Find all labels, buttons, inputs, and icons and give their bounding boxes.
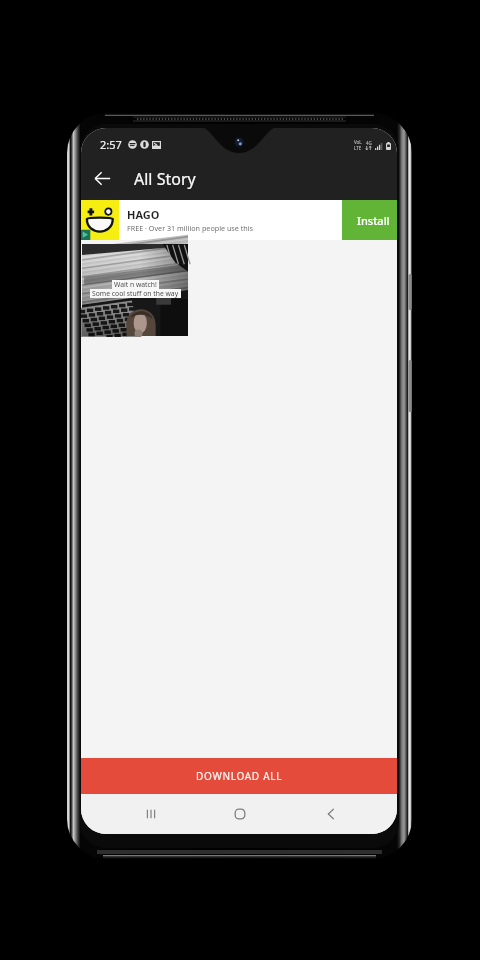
button[interactable]: HAGO: [81, 200, 397, 240]
staticText: Wait n watch!: [114, 280, 157, 289]
button[interactable]: Recent apps: [129, 794, 173, 834]
staticText: VoL: [354, 139, 362, 145]
button[interactable]: DOWNLOAD ALL: [81, 758, 397, 794]
staticText: 4G: [366, 140, 372, 146]
button[interactable]: Back: [309, 794, 353, 834]
staticText: All Story: [134, 168, 196, 190]
staticText: HAGO: [127, 207, 160, 222]
button[interactable]: Back: [81, 157, 124, 200]
button[interactable]: Wait n watch!: [82, 244, 188, 336]
button[interactable]: Install: [342, 200, 397, 240]
staticText: LTE: [354, 145, 362, 151]
button[interactable]: Home: [218, 794, 262, 834]
staticText: DOWNLOAD ALL: [196, 769, 283, 783]
staticText: Install: [357, 213, 390, 228]
staticText: Some cool stuff on the way: [92, 289, 179, 298]
staticText: 2:57: [100, 137, 122, 152]
staticText: FREE · Over 31 million people use this: [127, 223, 254, 233]
